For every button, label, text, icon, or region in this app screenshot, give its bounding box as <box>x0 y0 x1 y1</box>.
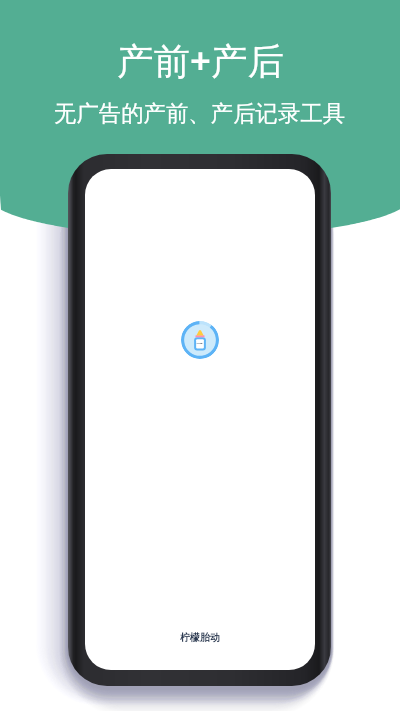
staticText: 产前+产后 <box>117 35 284 85</box>
staticText: 无广告的产前、产后记录工具 <box>54 99 346 127</box>
staticText: 柠檬胎动 <box>180 631 220 644</box>
button[interactable]: 柠檬胎动 app icon <box>181 321 219 359</box>
